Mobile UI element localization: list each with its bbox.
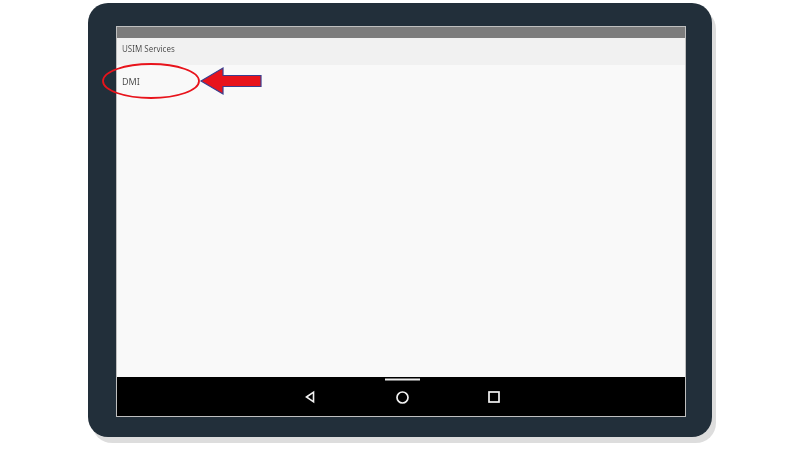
staticText: USIM Services: [122, 43, 175, 54]
button[interactable]: DMI: [117, 68, 685, 94]
button[interactable]: Recent apps: [472, 380, 516, 414]
button[interactable]: Back: [288, 380, 332, 414]
button[interactable]: Home: [380, 380, 424, 414]
staticText: DMI: [122, 75, 140, 87]
button[interactable]: USIM Services: [122, 43, 175, 54]
